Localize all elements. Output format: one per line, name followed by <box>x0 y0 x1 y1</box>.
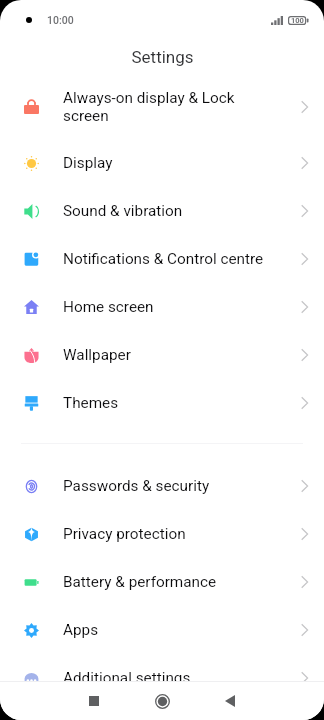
button[interactable]: Apps <box>0 606 324 654</box>
button[interactable]: Battery & performance <box>0 558 324 606</box>
staticText: Additional settings <box>63 669 284 687</box>
button[interactable]: Privacy protection <box>0 510 324 558</box>
button[interactable]: Back <box>196 682 264 720</box>
staticText: Passwords & security <box>63 477 284 495</box>
staticText: Themes <box>63 394 284 412</box>
staticText: Apps <box>63 621 284 639</box>
staticText: Home screen <box>63 298 284 316</box>
button[interactable]: Notifications & Control centre <box>0 235 324 283</box>
button[interactable]: Home <box>128 682 196 720</box>
staticText: Notifications & Control centre <box>63 250 284 268</box>
button[interactable]: Passwords & security <box>0 462 324 510</box>
button[interactable]: Additional settings <box>0 654 324 702</box>
staticText: Always-on display & Lock screen <box>63 89 284 125</box>
button[interactable]: Recent apps <box>60 682 128 720</box>
button[interactable]: Always-on display & Lock screen <box>0 74 324 139</box>
button[interactable]: Display <box>0 139 324 187</box>
button[interactable]: Themes <box>0 379 324 427</box>
staticText: Privacy protection <box>63 525 284 543</box>
staticText: Wallpaper <box>63 346 284 364</box>
button[interactable]: Home screen <box>0 283 324 331</box>
button[interactable]: Wallpaper <box>0 331 324 379</box>
staticText: 10:00 <box>47 14 74 26</box>
button[interactable]: Sound & vibration <box>0 187 324 235</box>
staticText: Battery & performance <box>63 573 284 591</box>
staticText: Sound & vibration <box>63 202 284 220</box>
staticText: Display <box>63 154 284 172</box>
staticText: Settings <box>131 47 194 67</box>
staticText: 100 <box>291 16 304 25</box>
